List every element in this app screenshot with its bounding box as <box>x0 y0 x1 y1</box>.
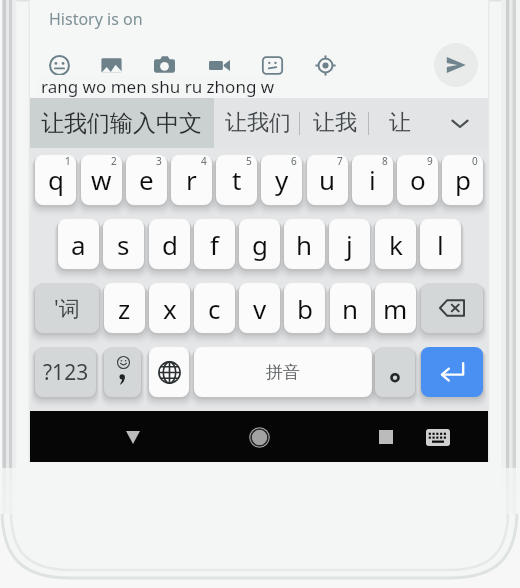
button[interactable]: w <box>81 155 122 205</box>
staticText: History is on <box>49 8 143 30</box>
staticText: j <box>346 227 353 262</box>
staticText: o <box>410 162 426 197</box>
button[interactable]: n <box>330 283 371 333</box>
button[interactable]: f <box>194 219 235 269</box>
button[interactable]: r <box>171 155 212 205</box>
staticText: u <box>319 162 336 197</box>
button[interactable]: v <box>239 283 280 333</box>
button[interactable]: z <box>104 283 145 333</box>
button[interactable]: Location <box>303 43 347 87</box>
staticText: e <box>139 162 154 197</box>
button[interactable]: i <box>352 155 393 205</box>
staticText: t <box>232 162 242 197</box>
button[interactable]: '词 <box>35 283 99 333</box>
button[interactable]: j <box>329 219 370 269</box>
button[interactable]: m <box>375 283 416 333</box>
staticText: 1 <box>65 155 71 168</box>
button[interactable]: Enter <box>421 347 483 397</box>
staticText: m <box>383 291 408 326</box>
button[interactable]: Send <box>434 43 478 87</box>
staticText: h <box>296 227 313 262</box>
staticText: 6 <box>291 155 297 168</box>
staticText: r <box>186 162 197 197</box>
button[interactable]: Camera <box>142 43 186 87</box>
staticText: w <box>91 162 112 197</box>
button[interactable]: 让 <box>369 98 431 148</box>
button[interactable]: g <box>239 219 280 269</box>
staticText: 4 <box>201 155 207 168</box>
button[interactable]: Emoji <box>37 43 81 87</box>
button[interactable]: t <box>216 155 257 205</box>
button[interactable]: Video <box>197 43 241 87</box>
staticText: g <box>252 227 268 262</box>
staticText: a <box>71 227 86 262</box>
staticText: l <box>437 227 444 262</box>
staticText: z <box>118 291 131 326</box>
button[interactable]: x <box>149 283 190 333</box>
button[interactable]: p <box>442 155 483 205</box>
staticText: ?123 <box>43 358 89 387</box>
staticText: 5 <box>246 155 252 168</box>
button[interactable]: Backspace <box>421 283 483 333</box>
button[interactable]: l <box>420 219 461 269</box>
staticText: 2 <box>111 155 117 168</box>
staticText: 0 <box>472 155 478 168</box>
button[interactable]: b <box>284 283 325 333</box>
button[interactable]: Emoji and comma <box>104 347 141 397</box>
staticText: 让我们 <box>225 109 291 137</box>
button[interactable]: 让我 <box>300 98 369 148</box>
staticText: d <box>162 227 178 262</box>
staticText: '词 <box>54 294 80 323</box>
button[interactable]: Switch keyboard <box>418 417 458 457</box>
button[interactable]: u <box>307 155 348 205</box>
button[interactable]: y <box>261 155 302 205</box>
staticText: n <box>342 291 359 326</box>
staticText: 让 <box>389 109 411 137</box>
staticText: p <box>455 162 471 197</box>
button[interactable]: a <box>58 219 99 269</box>
staticText: i <box>369 162 376 197</box>
staticText: f <box>210 227 219 262</box>
button[interactable]: k <box>375 219 416 269</box>
button[interactable]: Home <box>239 417 279 457</box>
staticText: b <box>297 291 313 326</box>
button[interactable]: q <box>35 155 76 205</box>
staticText: 拼音 <box>266 362 300 383</box>
button[interactable]: h <box>284 219 325 269</box>
button[interactable]: d <box>149 219 190 269</box>
button[interactable]: Recent apps <box>366 417 406 457</box>
staticText: c <box>208 291 221 326</box>
staticText: x <box>163 291 177 326</box>
staticText: 让我 <box>313 109 357 137</box>
button[interactable]: Switch input language <box>149 347 189 397</box>
staticText: k <box>389 227 403 262</box>
button[interactable]: c <box>194 283 235 333</box>
staticText: y <box>275 162 289 197</box>
button[interactable]: 让我们 <box>216 98 300 148</box>
button[interactable]: Sticker <box>250 43 294 87</box>
staticText: s <box>117 227 130 262</box>
button[interactable] <box>375 347 415 397</box>
button[interactable]: s <box>103 219 144 269</box>
staticText: 3 <box>156 155 162 168</box>
button[interactable]: o <box>397 155 438 205</box>
staticText: v <box>253 291 267 326</box>
button[interactable]: ?123 <box>35 347 96 397</box>
staticText: 9 <box>427 155 433 168</box>
button[interactable]: e <box>126 155 167 205</box>
staticText: 8 <box>382 155 388 168</box>
staticText: 7 <box>337 155 343 168</box>
button[interactable]: More candidates <box>438 98 482 148</box>
staticText: rang wo men shu ru zhong w <box>41 75 275 98</box>
staticText: 让我们输入中文 <box>41 109 202 138</box>
button[interactable]: 让我们输入中文 <box>30 98 214 148</box>
staticText: q <box>48 162 64 197</box>
button[interactable]: Back <box>113 417 153 457</box>
button[interactable]: Gallery <box>89 43 133 87</box>
button[interactable]: 拼音 <box>194 347 372 397</box>
